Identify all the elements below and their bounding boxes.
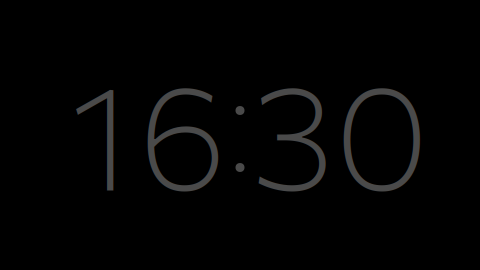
staticText: 1 — [70, 41, 131, 221]
staticText: 6 — [138, 41, 226, 221]
staticText: 3 — [251, 41, 334, 221]
staticText: 0 — [334, 41, 429, 221]
button[interactable]: 16:30 — [60, 45, 419, 225]
